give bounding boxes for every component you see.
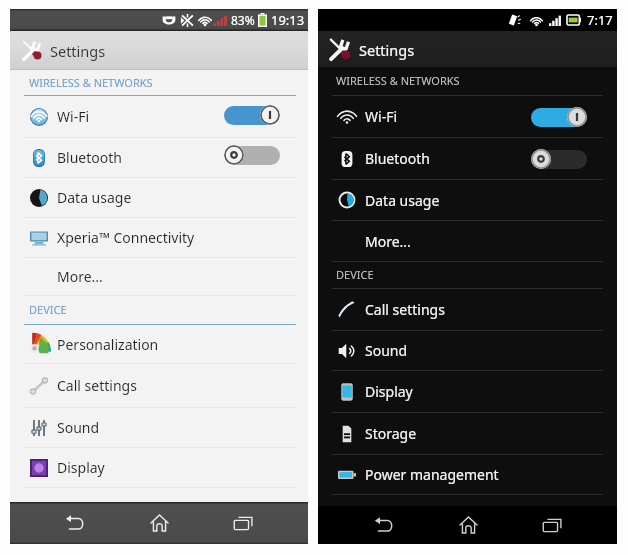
staticText: Wi-Fi xyxy=(365,107,398,126)
staticText: Xperia™ Connectivity xyxy=(57,228,195,247)
staticText: Sound xyxy=(365,341,408,360)
staticText: WIRELESS & NETWORKS xyxy=(336,73,460,88)
button[interactable]: Back xyxy=(33,502,117,544)
button[interactable]: Sound xyxy=(318,331,617,371)
staticText: 83% xyxy=(231,12,255,28)
staticText: 7:17 xyxy=(587,11,613,29)
staticText: DEVICE xyxy=(29,302,67,317)
staticText: Display xyxy=(365,382,413,401)
button[interactable]: Home xyxy=(117,502,201,544)
button[interactable]: Wi-Fi xyxy=(318,96,617,138)
staticText: 19:13 xyxy=(271,11,305,29)
staticText: More... xyxy=(57,267,103,286)
staticText: Data usage xyxy=(365,191,440,210)
staticText: Bluetooth xyxy=(365,149,430,168)
staticText: Call settings xyxy=(57,376,137,395)
staticText: Settings xyxy=(50,41,106,61)
button[interactable]: Bluetooth xyxy=(318,138,617,180)
button[interactable]: Power management xyxy=(318,455,617,495)
button[interactable]: Bluetooth xyxy=(10,138,308,178)
button[interactable]: More... xyxy=(10,258,308,296)
button[interactable]: Xperia™ Connectivity xyxy=(10,218,308,258)
button[interactable]: Sound xyxy=(10,408,308,448)
button[interactable]: Data usage xyxy=(318,180,617,221)
staticText: DEVICE xyxy=(336,267,374,282)
button[interactable] xyxy=(224,105,280,125)
button[interactable]: More... xyxy=(318,221,617,262)
staticText: Power management xyxy=(365,465,499,484)
staticText: Wi-Fi xyxy=(57,107,90,126)
staticText: Storage xyxy=(365,424,417,443)
button[interactable]: Home xyxy=(426,506,510,544)
staticText: Personalization xyxy=(57,335,159,354)
button[interactable]: Recent apps xyxy=(201,502,285,544)
button[interactable]: Display xyxy=(10,448,308,488)
button[interactable]: Back xyxy=(342,506,426,544)
staticText: WIRELESS & NETWORKS xyxy=(29,75,153,90)
staticText: Call settings xyxy=(365,300,445,319)
button[interactable] xyxy=(224,145,280,165)
staticText: Data usage xyxy=(57,188,132,207)
button[interactable]: Recent apps xyxy=(510,506,594,544)
button[interactable]: Wi-Fi xyxy=(10,96,308,138)
staticText: More... xyxy=(365,232,411,251)
staticText: Display xyxy=(57,458,105,477)
staticText: Bluetooth xyxy=(57,148,122,167)
button[interactable]: Display xyxy=(318,371,617,413)
button[interactable]: Call settings xyxy=(10,364,308,408)
staticText: Sound xyxy=(57,418,100,437)
button[interactable]: Data usage xyxy=(10,178,308,218)
staticText: Settings xyxy=(359,40,415,60)
button[interactable] xyxy=(531,149,587,169)
button[interactable]: Call settings xyxy=(318,289,617,331)
button[interactable]: Personalization xyxy=(10,325,308,364)
button[interactable] xyxy=(531,107,587,127)
button[interactable]: Storage xyxy=(318,413,617,455)
